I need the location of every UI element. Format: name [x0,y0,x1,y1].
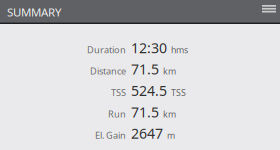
staticText: m [167,129,175,141]
staticText: km [163,65,176,77]
staticText: 71.5 [131,59,159,79]
staticText: 2647 [131,124,163,143]
staticText: Duration [87,43,126,56]
staticText: Run [108,107,126,120]
staticText: km [163,108,176,120]
staticText: 71.5 [131,102,159,121]
staticText: 524.5 [131,81,167,100]
staticText: SUMMARY [7,4,61,20]
staticText: hms [171,44,188,56]
staticText: 12:30 [131,38,167,57]
staticText: Distance [90,65,126,77]
button[interactable]: Menu [256,0,280,22]
staticText: TSS [111,86,126,99]
staticText: TSS [171,87,186,99]
staticText: El. Gain [95,129,126,141]
